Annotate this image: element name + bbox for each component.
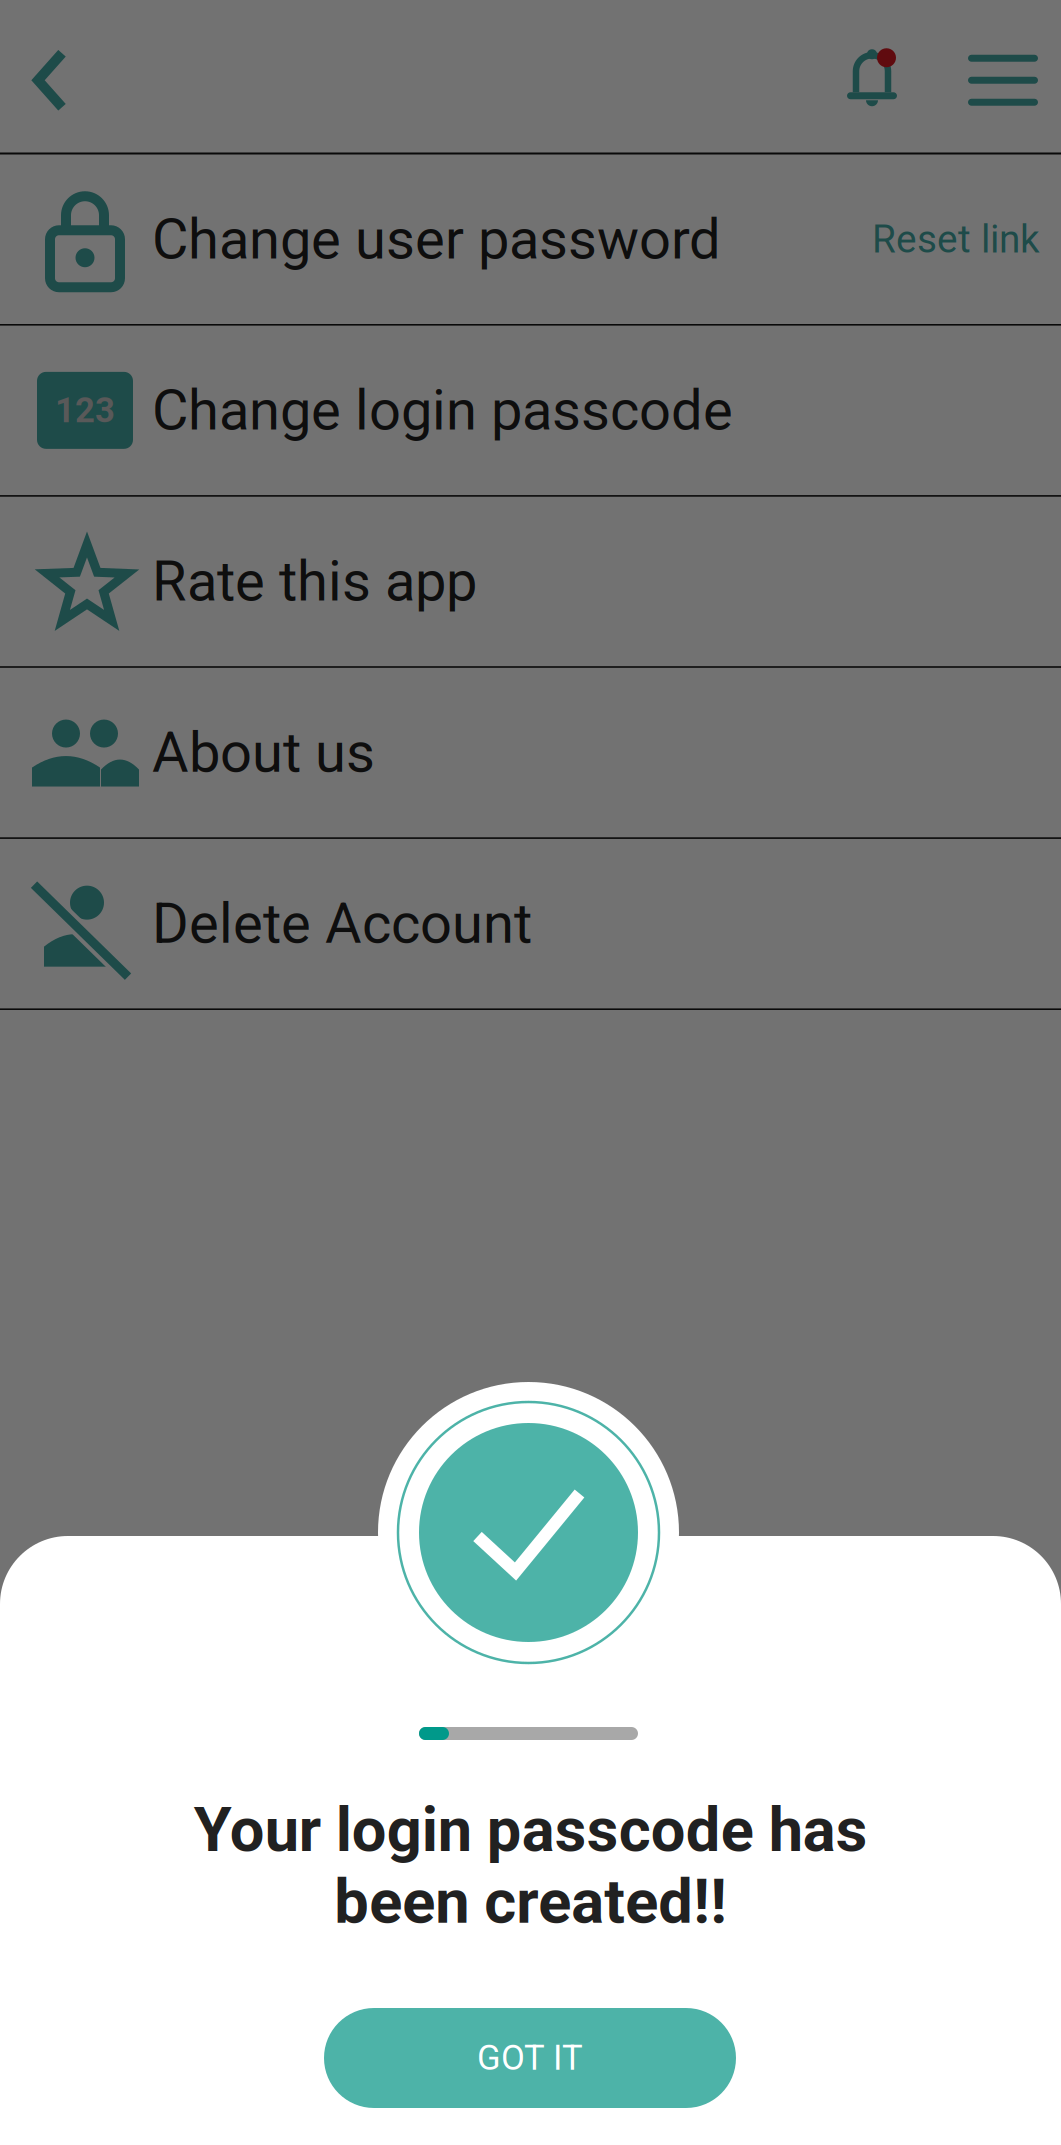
staticText: Your login passcode has been created!! — [193, 1794, 867, 1938]
button[interactable]: Change login passcode — [0, 326, 1061, 497]
staticText: Reset link — [872, 217, 1040, 262]
button[interactable]: Change user password — [0, 154, 1061, 326]
button[interactable]: About us — [0, 668, 1061, 839]
staticText: About us — [152, 720, 375, 785]
button[interactable]: GOT IT — [324, 2008, 736, 2108]
staticText: Delete Account — [152, 891, 532, 956]
staticText: Rate this app — [152, 549, 477, 614]
button[interactable]: Delete Account — [0, 839, 1061, 1010]
staticText: GOT IT — [477, 2038, 583, 2078]
staticText: Change login passcode — [152, 377, 733, 443]
button[interactable]: Notifications — [825, 3, 921, 155]
button[interactable]: Back — [0, 4, 105, 156]
staticText: 123 — [55, 390, 115, 431]
staticText: Change user password — [152, 206, 721, 272]
button[interactable]: Rate this app — [0, 497, 1061, 668]
button[interactable]: Menu — [945, 4, 1061, 156]
